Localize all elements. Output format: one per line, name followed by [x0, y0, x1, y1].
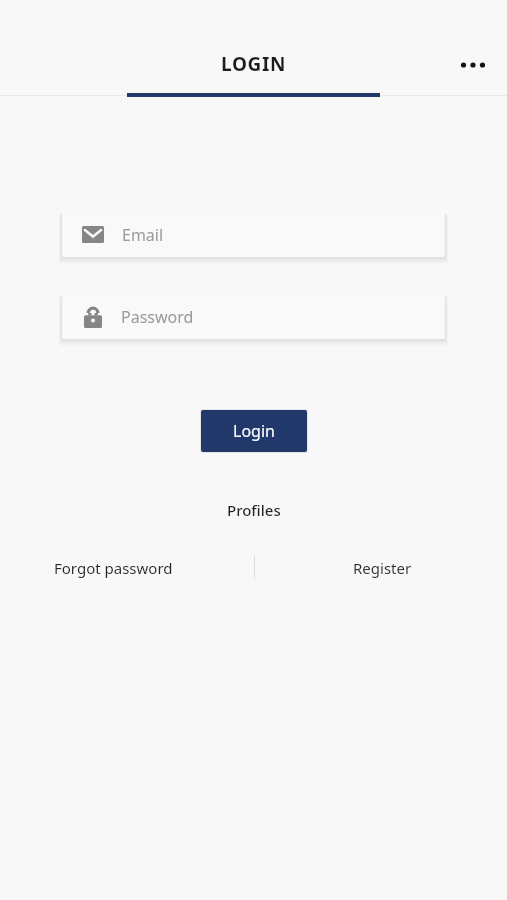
- staticText: Password: [121, 306, 194, 328]
- button[interactable]: Password: [62, 294, 445, 339]
- button[interactable]: Email: [62, 212, 445, 257]
- staticText: Forgot password: [54, 558, 173, 578]
- button[interactable]: Register: [339, 553, 426, 583]
- staticText: Login: [233, 420, 275, 442]
- staticText: Profiles: [227, 500, 281, 520]
- button[interactable]: Profiles: [213, 497, 295, 523]
- button[interactable]: Forgot password: [40, 553, 187, 583]
- staticText: Email: [122, 224, 164, 246]
- staticText: Register: [353, 558, 412, 578]
- staticText: LOGIN: [221, 51, 286, 77]
- button[interactable]: Login: [201, 410, 307, 452]
- button[interactable]: More options: [452, 44, 494, 86]
